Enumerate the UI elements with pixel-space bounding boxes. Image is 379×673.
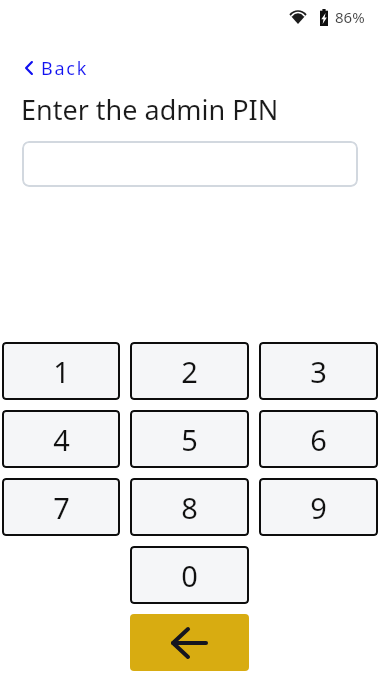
- staticText: 4: [53, 420, 70, 459]
- staticText: 7: [53, 488, 70, 527]
- button[interactable]: 0: [130, 546, 249, 604]
- staticText: 2: [181, 352, 198, 391]
- staticText: 3: [310, 352, 327, 391]
- button[interactable]: 6: [259, 410, 378, 468]
- button[interactable]: 1: [2, 342, 120, 400]
- button[interactable]: 5: [130, 410, 249, 468]
- staticText: 8: [181, 488, 198, 527]
- button[interactable]: 7: [2, 478, 120, 536]
- button[interactable]: 4: [2, 410, 120, 468]
- button[interactable]: 8: [130, 478, 249, 536]
- button[interactable]: 2: [130, 342, 249, 400]
- staticText: 1: [53, 352, 70, 391]
- button[interactable]: Delete: [130, 614, 249, 671]
- button[interactable]: [22, 141, 358, 187]
- staticText: Back: [41, 56, 89, 81]
- button[interactable]: Back: [25, 55, 89, 80]
- staticText: 86%: [335, 7, 365, 27]
- staticText: 6: [310, 420, 327, 459]
- staticText: Enter the admin PIN: [21, 91, 279, 128]
- staticText: 9: [310, 488, 327, 527]
- staticText: 0: [181, 556, 198, 595]
- button[interactable]: 3: [259, 342, 378, 400]
- button[interactable]: 9: [259, 478, 378, 536]
- staticText: 5: [181, 420, 198, 459]
